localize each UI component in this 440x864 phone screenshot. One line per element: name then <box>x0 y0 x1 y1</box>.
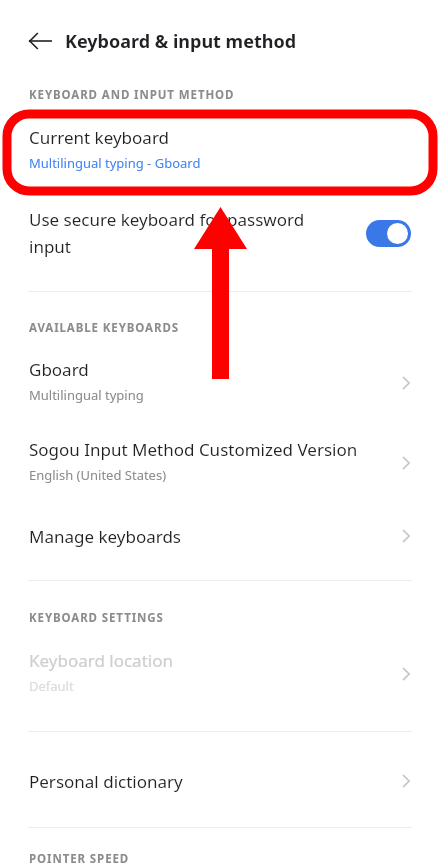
staticText: Multilingual typing - Gboard <box>29 154 201 172</box>
staticText: Default <box>29 677 74 695</box>
button[interactable]: Manage keyboards <box>0 512 440 560</box>
staticText: Sogou Input Method Customized Version <box>29 438 358 461</box>
staticText: KEYBOARD AND INPUT METHOD <box>29 87 235 103</box>
staticText: AVAILABLE KEYBOARDS <box>29 320 179 336</box>
staticText: Current keyboard <box>29 126 170 149</box>
button[interactable]: Personal dictionary <box>0 757 440 805</box>
staticText: Gboard <box>29 358 89 381</box>
staticText: Multilingual typing <box>29 386 144 404</box>
staticText: KEYBOARD SETTINGS <box>29 610 164 626</box>
button[interactable]: Back <box>24 24 58 58</box>
staticText: Use secure keyboard for password input <box>29 208 341 258</box>
staticText: Manage keyboards <box>29 525 182 548</box>
button[interactable]: Keyboard location <box>0 643 440 705</box>
staticText: POINTER SPEED <box>29 851 130 864</box>
button[interactable]: Gboard <box>0 352 440 414</box>
button[interactable]: Use secure keyboard for password input <box>0 196 440 274</box>
staticText: Personal dictionary <box>29 770 183 793</box>
button[interactable]: Sogou Input Method Customized Version <box>0 432 440 494</box>
button[interactable]: Current keyboard <box>0 120 440 182</box>
staticText: Keyboard location <box>29 649 173 672</box>
staticText: English (United States) <box>29 466 167 484</box>
staticText: Keyboard & input method <box>65 29 297 54</box>
